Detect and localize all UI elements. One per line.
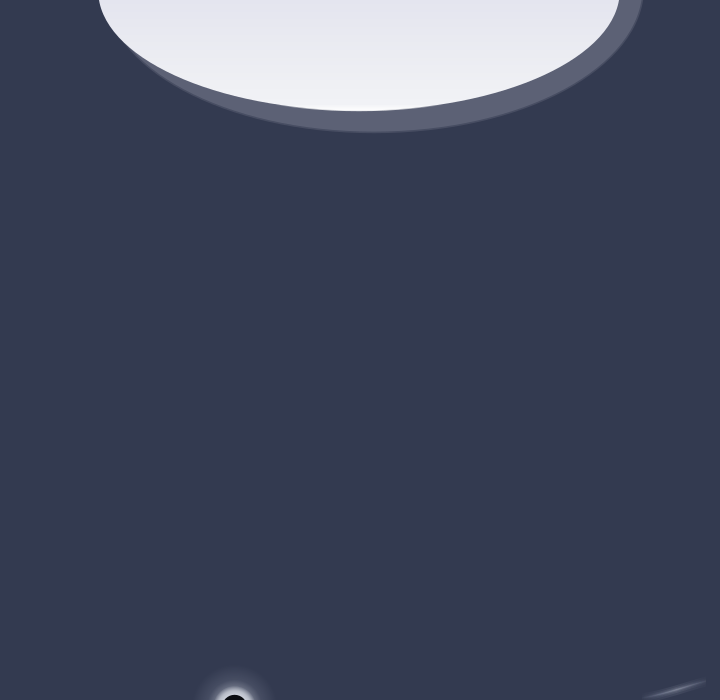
button[interactable]: Capture xyxy=(0,0,720,700)
